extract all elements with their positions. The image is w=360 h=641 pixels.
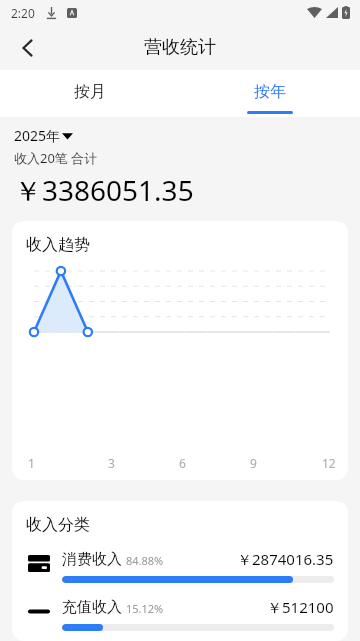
staticText: 按月 — [74, 82, 106, 102]
button[interactable]: 充值收入 — [12, 597, 348, 631]
staticText: 12 — [322, 455, 336, 471]
staticText: 收入分类 — [26, 515, 90, 535]
button[interactable]: 2025年 — [14, 126, 73, 145]
staticText: 2025年 — [14, 126, 61, 145]
staticText: 84.88% — [126, 553, 164, 568]
button[interactable]: 消费收入 — [12, 549, 348, 583]
staticText: ￥3386051.35 — [14, 171, 194, 209]
staticText: 营收统计 — [144, 36, 216, 59]
staticText: 充值收入 — [62, 598, 122, 617]
staticText: 收入趋势 — [26, 235, 90, 255]
staticText: 9 — [250, 455, 257, 471]
button[interactable]: 按年 — [180, 70, 360, 117]
staticText: 15.12% — [126, 601, 164, 616]
staticText: 6 — [179, 455, 186, 471]
staticText: 2:20 — [11, 5, 35, 21]
staticText: 1 — [28, 455, 35, 471]
staticText: 消费收入 — [62, 550, 122, 569]
staticText: ￥2874016.35 — [237, 549, 334, 569]
staticText: ￥512100 — [267, 597, 334, 617]
staticText: 收入20笔 合计 — [14, 149, 98, 167]
button[interactable]: Back — [6, 26, 50, 70]
staticText: 按年 — [254, 82, 286, 102]
button[interactable]: 按月 — [0, 70, 180, 117]
staticText: 3 — [108, 455, 115, 471]
